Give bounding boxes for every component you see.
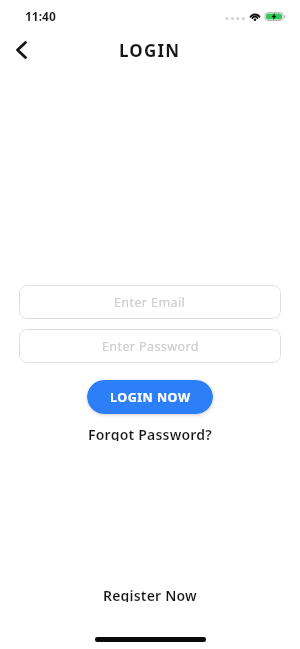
staticText: Enter Password [102, 338, 199, 355]
staticText: Forgot Password? [88, 425, 212, 441]
button[interactable] [3, 32, 39, 68]
staticText: Enter Email [114, 294, 186, 311]
button[interactable]: Forgot Password? [88, 425, 212, 441]
button[interactable]: LOGIN NOW [87, 380, 213, 414]
staticText: LOGIN [119, 39, 181, 62]
staticText: LOGIN NOW [110, 389, 191, 406]
staticText: Register Now [103, 586, 197, 602]
staticText: 11:40 [25, 8, 56, 24]
button[interactable]: Enter Email [19, 285, 281, 319]
button[interactable]: Enter Password [19, 329, 281, 363]
button[interactable]: Register Now [103, 586, 197, 602]
